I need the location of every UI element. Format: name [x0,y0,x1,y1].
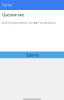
staticText: Lorem ipsum dolor sit amet consectetur [2,21,56,25]
staticText: Submit [26,52,38,58]
staticText: Form [2,2,12,8]
staticText: Question one [2,12,24,17]
